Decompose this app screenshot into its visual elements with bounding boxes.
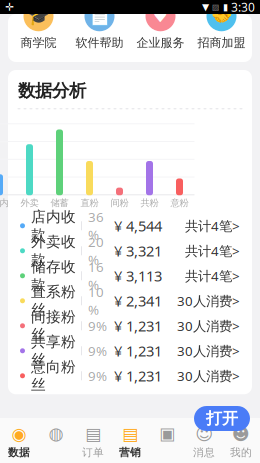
staticText: 9% (88, 367, 107, 385)
staticText: ☺ (195, 424, 213, 444)
staticText: 10% (88, 283, 104, 318)
staticText: 间接粉丝 (31, 308, 76, 344)
staticText: 36% (88, 208, 104, 243)
staticText: ▼ (202, 2, 209, 12)
staticText: 订单 (82, 446, 104, 459)
staticText: 企业服务 (136, 35, 184, 50)
staticText: 共享粉丝 (31, 333, 76, 369)
button[interactable]: 打开 (194, 406, 250, 431)
staticText: 软件帮助 (75, 35, 123, 50)
staticText: 商学院 (20, 35, 56, 50)
staticText: ¥ 2,341 (114, 291, 162, 311)
staticText: ¥ 1,231 (114, 341, 162, 361)
staticText: 我的 (230, 446, 252, 459)
button[interactable]: 订单 (74, 424, 111, 458)
staticText: 30人消费> (177, 292, 240, 310)
staticText: ◍ (48, 424, 63, 443)
button[interactable]: 店内收款 (8, 213, 252, 238)
button[interactable]: Tab (148, 424, 185, 458)
button[interactable]: 🤝 (191, 1, 252, 50)
staticText: 外卖 (20, 197, 38, 209)
staticText: 储存收款 (31, 258, 76, 294)
staticText: 共计4笔> (185, 217, 240, 235)
staticText: ¥ 4,544 (114, 216, 162, 236)
button[interactable]: Tab (37, 424, 74, 458)
staticText: ♥ (152, 6, 168, 26)
button[interactable]: 消息 (185, 424, 222, 458)
button[interactable]: ♥ (130, 1, 191, 50)
staticText: 9% (88, 342, 107, 360)
staticText: 30人消费> (177, 317, 240, 335)
staticText: 共粉 (140, 197, 158, 209)
staticText: ▮ (223, 2, 228, 12)
staticText: 20% (88, 233, 104, 268)
staticText: ✛ (5, 1, 14, 13)
staticText: 店内 (0, 197, 8, 209)
staticText: 外卖收款 (31, 233, 76, 269)
button[interactable]: 外卖收款 (8, 238, 252, 263)
staticText: 共计4笔> (185, 242, 240, 260)
button[interactable]: 储存收款 (8, 263, 252, 288)
staticText: ¥ 1,231 (114, 316, 162, 336)
staticText: ¥ 3,113 (114, 266, 162, 286)
staticText: 招商加盟 (197, 35, 245, 50)
staticText: 直粉 (80, 197, 98, 209)
button[interactable]: 营销 (111, 424, 148, 458)
staticText: 30人消费> (177, 367, 240, 385)
button[interactable]: 我的 (222, 424, 259, 458)
staticText: ☻ (232, 424, 250, 444)
staticText: 直系粉丝 (31, 283, 76, 319)
button[interactable]: 🎓 (8, 1, 69, 50)
staticText: 打开 (206, 409, 238, 428)
staticText: 营销 (119, 446, 141, 459)
staticText: 消息 (193, 446, 215, 459)
staticText: 意粉 (170, 197, 188, 209)
staticText: 🤝 (210, 6, 232, 26)
button[interactable]: 直系粉丝 (8, 288, 252, 313)
staticText: ▣ (159, 424, 175, 443)
staticText: ▤ (122, 424, 138, 444)
staticText: 16% (88, 258, 104, 293)
staticText: 🎓 (27, 6, 49, 26)
staticText: 9% (88, 317, 107, 335)
staticText: 店内收款 (31, 208, 76, 244)
staticText: 数据 (8, 446, 30, 459)
button[interactable]: 共享粉丝 (8, 338, 252, 363)
button[interactable]: 📄 (69, 1, 130, 50)
staticText: 共计4笔> (185, 267, 240, 285)
staticText: ▤ (85, 424, 101, 444)
staticText: 数据分析 (18, 80, 86, 101)
staticText: 📄 (88, 6, 110, 26)
button[interactable]: 间接粉丝 (8, 313, 252, 338)
staticText: 间粉 (110, 197, 128, 209)
staticText: 意向粉丝 (31, 358, 76, 394)
staticText: ¥ 3,321 (114, 241, 162, 261)
staticText: ◉ (11, 424, 26, 444)
staticText: 储蓄 (50, 197, 68, 209)
staticText: 3:30 (228, 0, 255, 15)
staticText: ¥ 1,231 (114, 366, 162, 386)
staticText: 30人消费> (177, 342, 240, 360)
button[interactable]: 数据 (0, 424, 37, 458)
staticText: ▨ (209, 2, 223, 12)
button[interactable]: 意向粉丝 (8, 363, 252, 388)
